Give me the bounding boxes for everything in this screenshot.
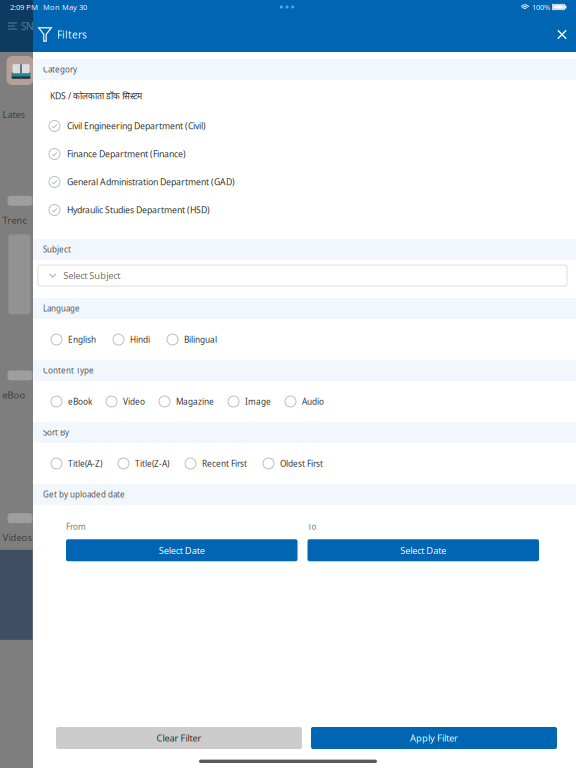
staticText: Get by uploaded date — [43, 489, 125, 500]
staticText: Bilingual — [184, 334, 217, 345]
button[interactable]: Bilingual — [167, 334, 217, 345]
staticText: Title(A-Z) — [68, 458, 102, 469]
staticText: To — [307, 521, 316, 532]
staticText: Image — [245, 396, 271, 407]
staticText: Subject — [43, 244, 71, 255]
staticText: Finance Department (Finance) — [67, 148, 186, 160]
staticText: KDS / कोलकाता डॉक सिस्टम — [50, 90, 142, 102]
staticText: Hydraulic Studies Department (HSD) — [67, 204, 210, 216]
staticText: Filters — [57, 28, 87, 41]
button[interactable]: Hindi — [113, 334, 150, 345]
staticText: Civil Engineering Department (Civil) — [67, 120, 206, 132]
staticText: Select Date — [400, 544, 446, 557]
button[interactable]: Select Date — [307, 539, 539, 561]
button[interactable]: Clear Filter — [56, 727, 302, 749]
button[interactable]: Magazine — [159, 396, 214, 407]
staticText: Video — [123, 396, 145, 407]
staticText: 100% — [532, 2, 550, 12]
staticText: Select Date — [159, 544, 205, 557]
staticText: Oldest First — [280, 458, 323, 469]
staticText: Language — [43, 303, 80, 314]
staticText: Magazine — [176, 396, 214, 407]
button[interactable]: Finance Department (Finance) — [33, 140, 576, 168]
staticText: Select Subject — [63, 269, 120, 282]
button[interactable]: English — [51, 334, 96, 345]
staticText: General Administration Department (GAD) — [67, 176, 235, 188]
button[interactable]: General Administration Department (GAD) — [33, 168, 576, 196]
staticText: Sort By — [43, 427, 69, 438]
staticText: Content Type — [43, 365, 94, 376]
staticText: Trenc — [2, 214, 26, 226]
staticText: Audio — [302, 396, 324, 407]
staticText: English — [68, 334, 96, 345]
button[interactable]: Audio — [285, 396, 324, 407]
button[interactable]: Select Subject — [38, 265, 567, 286]
button[interactable]: Apply Filter — [311, 727, 557, 749]
button[interactable]: eBook — [51, 396, 92, 407]
staticText: Lates — [2, 108, 24, 121]
staticText: Recent First — [202, 458, 247, 469]
staticText: Hindi — [130, 334, 150, 345]
staticText: Title(Z-A) — [135, 458, 169, 469]
staticText: Clear Filter — [156, 732, 201, 744]
button[interactable]: Select Date — [66, 539, 297, 561]
button[interactable]: Hydraulic Studies Department (HSD) — [33, 196, 576, 224]
staticText: eBook — [68, 396, 92, 407]
button[interactable]: Civil Engineering Department (Civil) — [33, 112, 576, 140]
staticText: SN — [21, 19, 34, 33]
button[interactable]: Image — [228, 396, 271, 407]
staticText: From — [66, 521, 86, 532]
staticText: eBoo — [2, 388, 25, 401]
staticText: 2:09 PM — [10, 2, 38, 12]
button[interactable]: Close — [553, 25, 571, 43]
button[interactable]: Title(Z-A) — [118, 458, 169, 469]
staticText: Category — [43, 64, 77, 75]
button[interactable]: Oldest First — [263, 458, 323, 469]
button[interactable]: Video — [106, 396, 145, 407]
button[interactable]: Recent First — [185, 458, 247, 469]
staticText: Videos — [2, 531, 31, 544]
staticText: Apply Filter — [410, 732, 458, 744]
button[interactable]: Title(A-Z) — [51, 458, 102, 469]
staticText: Mon May 30 — [43, 2, 87, 12]
